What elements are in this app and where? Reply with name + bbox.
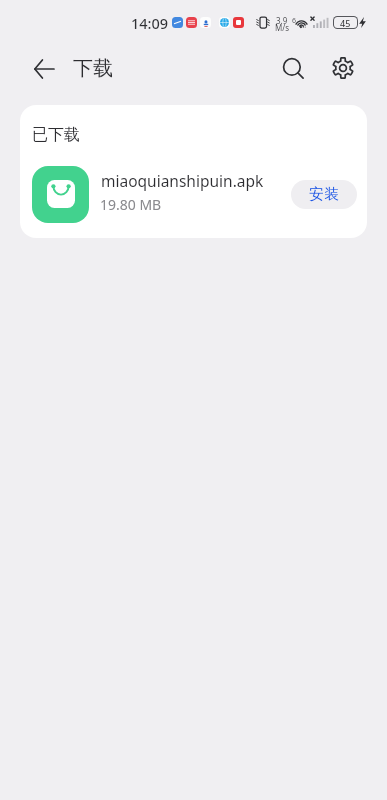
button[interactable]: Back xyxy=(20,45,68,93)
staticText: miaoquianshipuin.apk xyxy=(101,170,264,191)
button[interactable]: Search xyxy=(270,45,316,91)
button[interactable]: Settings xyxy=(320,45,366,91)
button[interactable]: miaoquianshipuin.apk xyxy=(20,163,367,225)
staticText: 45 xyxy=(340,17,351,28)
staticText: 安装 xyxy=(309,185,339,204)
staticText: 已下载 xyxy=(32,125,80,145)
staticText: 14:09 xyxy=(131,13,169,33)
staticText: 3.9 xyxy=(276,15,288,26)
staticText: 19.80 MB xyxy=(100,195,162,214)
staticText: 下载 xyxy=(73,56,113,81)
button[interactable]: 安装 xyxy=(291,180,357,209)
staticText: 6 xyxy=(292,16,297,26)
staticText: M/s xyxy=(275,22,290,33)
